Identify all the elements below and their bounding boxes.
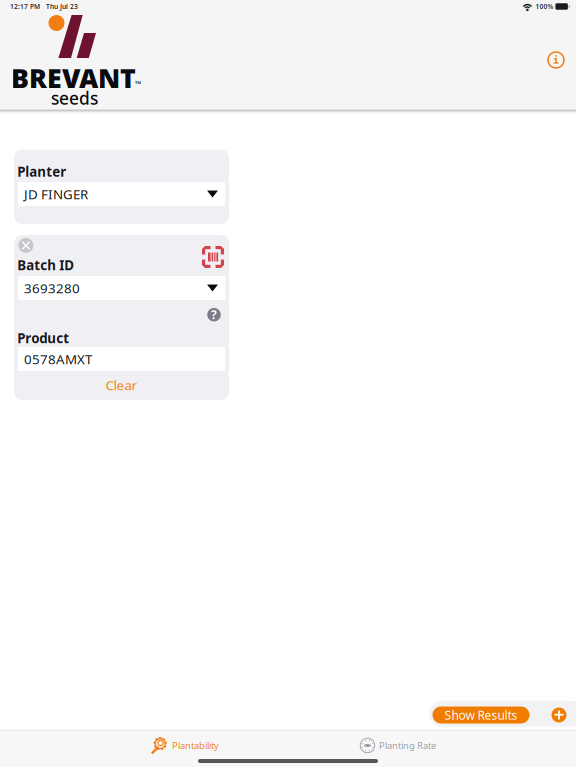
button[interactable]: Planting Rate [360, 731, 504, 759]
staticText: Product [17, 329, 69, 347]
staticText: Planter [17, 163, 66, 180]
button[interactable]: Plantability [150, 731, 294, 759]
button[interactable]: Info [541, 45, 571, 75]
staticText: Thu Jul 23 [46, 2, 78, 11]
staticText: 3693280 [24, 279, 80, 297]
staticText: JD FINGER [24, 185, 88, 203]
button[interactable]: Clear [18, 376, 225, 394]
staticText: Clear [105, 376, 137, 394]
staticText: ? [211, 307, 217, 323]
staticText: 100% [535, 2, 553, 11]
staticText: 12:17 PM [10, 2, 40, 11]
staticText: Show Results [444, 707, 517, 723]
button[interactable]: Clear batch ID [15, 234, 37, 256]
staticText: Plantability [172, 739, 219, 752]
button[interactable]: Add [548, 704, 570, 726]
button[interactable]: Scan barcode [199, 243, 227, 271]
button[interactable]: Help [204, 305, 224, 325]
staticText: 0578AMXT [24, 350, 92, 368]
staticText: BREVANT [11, 60, 136, 96]
staticText: Batch ID [17, 256, 74, 274]
staticText: ™ [135, 79, 141, 89]
button[interactable]: Show Results [432, 706, 529, 723]
staticText: seeds [51, 86, 98, 109]
staticText: Planting Rate [379, 739, 436, 752]
